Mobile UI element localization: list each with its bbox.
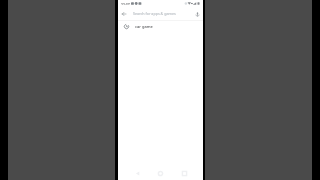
button[interactable]: Recent apps: [177, 168, 191, 178]
button[interactable]: Home: [153, 168, 167, 178]
staticText: 11:37: [121, 2, 130, 5]
button[interactable]: car game: [118, 21, 203, 31]
button[interactable]: Back: [120, 10, 128, 18]
staticText: car game: [135, 24, 153, 29]
staticText: Search for apps & games: [133, 11, 193, 16]
button[interactable]: Voice search: [193, 10, 201, 18]
